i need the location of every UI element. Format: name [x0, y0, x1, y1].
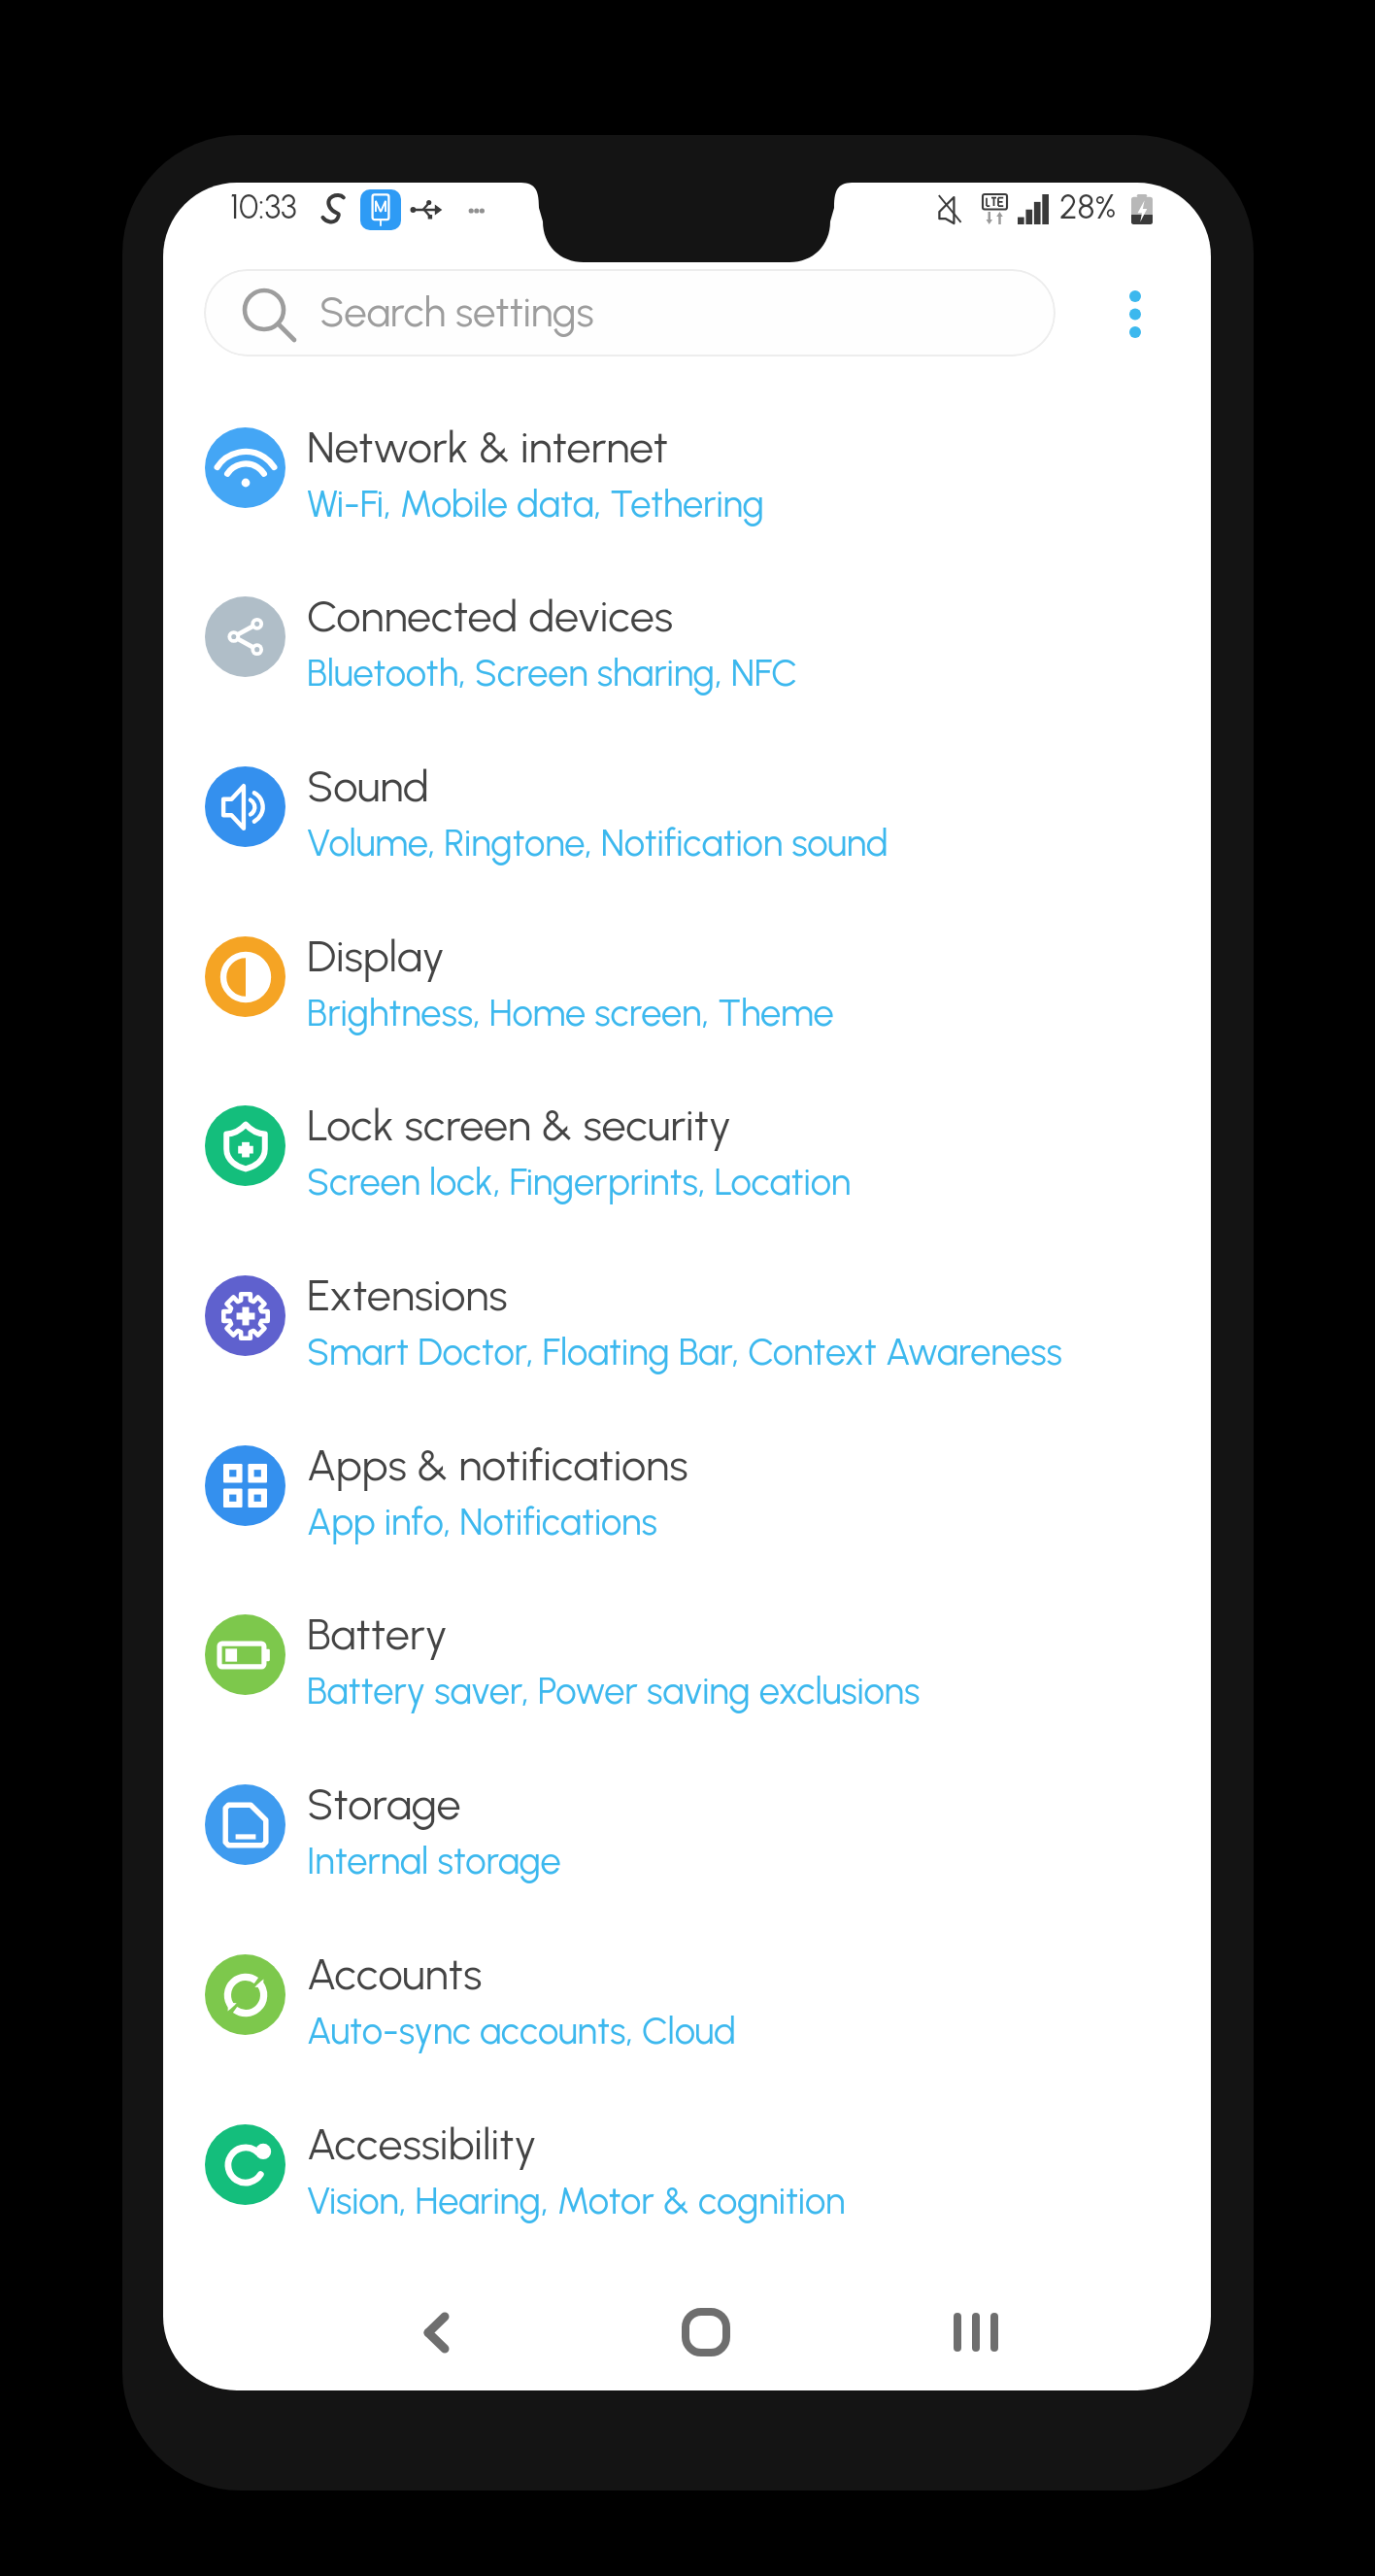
staticText: Connected devices	[307, 590, 674, 642]
button[interactable]: Network & internet	[163, 383, 1211, 553]
button[interactable]: Accounts	[163, 1910, 1211, 2080]
button[interactable]: Recent apps	[889, 2254, 1063, 2390]
button[interactable]: Lock screen & security	[163, 1061, 1211, 1231]
staticText: Accessibility	[307, 2118, 537, 2170]
button[interactable]: Display	[163, 892, 1211, 1062]
button[interactable]: Home	[619, 2254, 793, 2390]
staticText: App info, Notifications	[307, 1500, 657, 1544]
staticText: Storage	[307, 1778, 461, 1830]
button[interactable]: Back	[349, 2254, 523, 2390]
staticText: Battery	[307, 1608, 448, 1660]
staticText: Internal storage	[307, 1839, 561, 1883]
staticText: Smart Doctor, Floating Bar, Context Awar…	[307, 1330, 1062, 1374]
button[interactable]: Search settings	[204, 269, 1056, 356]
staticText: Sound	[307, 760, 429, 812]
staticText: 10:33	[230, 187, 297, 227]
button[interactable]: Sound	[163, 722, 1211, 892]
staticText: Battery saver, Power saving exclusions	[307, 1669, 921, 1713]
staticText: 28%	[1059, 187, 1117, 227]
button[interactable]: Storage	[163, 1740, 1211, 1910]
staticText: Extensions	[307, 1269, 508, 1321]
button[interactable]: Accessibility	[163, 2080, 1211, 2250]
button[interactable]: Extensions	[163, 1231, 1211, 1401]
button[interactable]: Apps & notifications	[163, 1401, 1211, 1571]
staticText: Vision, Hearing, Motor & cognition	[307, 2179, 846, 2223]
staticText: Volume, Ringtone, Notification sound	[307, 821, 889, 865]
staticText: Auto-sync accounts, Cloud	[307, 2009, 736, 2053]
staticText: Network & internet	[307, 421, 668, 473]
button[interactable]: More options	[1084, 267, 1187, 360]
staticText: Search settings	[319, 288, 594, 336]
staticText: Screen lock, Fingerprints, Location	[307, 1160, 852, 1204]
button[interactable]: Battery	[163, 1570, 1211, 1740]
staticText: Wi-Fi, Mobile data, Tethering	[307, 482, 764, 526]
button[interactable]: Connected devices	[163, 552, 1211, 722]
staticText: Brightness, Home screen, Theme	[307, 991, 834, 1035]
staticText: Bluetooth, Screen sharing, NFC	[307, 651, 798, 695]
staticText: Accounts	[307, 1948, 483, 2000]
staticText: Apps & notifications	[307, 1439, 688, 1491]
staticText: Lock screen & security	[307, 1099, 731, 1151]
staticText: Display	[307, 930, 445, 982]
